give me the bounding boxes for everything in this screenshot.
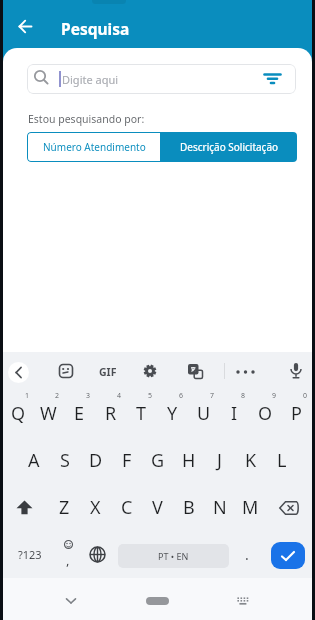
staticText: Pesquisa [61, 18, 130, 39]
staticText: F [122, 448, 132, 473]
button[interactable]: X [80, 484, 111, 531]
staticText: A [28, 448, 40, 473]
staticText: . [245, 545, 249, 564]
button[interactable]: , [57, 531, 79, 578]
button[interactable]: L [266, 437, 297, 484]
button[interactable]: S [49, 437, 80, 484]
staticText: 2 [55, 391, 60, 401]
staticText: Y [167, 401, 178, 426]
staticText: 8 [241, 391, 246, 401]
button[interactable]: P [281, 390, 312, 437]
staticText: S [60, 448, 70, 473]
staticText: PT • EN [158, 550, 189, 562]
button[interactable]: M [235, 484, 266, 531]
staticText: 6 [179, 391, 184, 401]
staticText: R [105, 401, 117, 426]
staticText: Z [59, 495, 70, 520]
staticText: B [183, 495, 195, 520]
button[interactable]: I [219, 390, 250, 437]
button[interactable] [266, 484, 312, 531]
button[interactable] [59, 364, 73, 378]
button[interactable]: Digite aqui [27, 64, 296, 94]
button[interactable]: Descrição Solicitação [161, 132, 297, 162]
staticText: K [245, 448, 257, 473]
button[interactable]: A [18, 437, 49, 484]
button[interactable]: H [173, 437, 204, 484]
button[interactable] [237, 597, 249, 605]
button[interactable]: V [142, 484, 173, 531]
button[interactable]: PT • EN [118, 544, 229, 568]
button[interactable] [290, 363, 302, 379]
staticText: Estou pesquisando por: [28, 112, 145, 126]
staticText: E [74, 401, 85, 426]
staticText: U [197, 401, 211, 426]
button[interactable]: ?123 [3, 531, 57, 578]
staticText: I [231, 401, 238, 426]
button[interactable]: J [204, 437, 235, 484]
staticText: H [182, 448, 196, 473]
staticText: X [90, 495, 101, 520]
button[interactable]: Número Atendimento [27, 132, 161, 162]
button[interactable] [188, 364, 203, 379]
button[interactable] [3, 484, 49, 531]
staticText: 1 [25, 391, 30, 401]
button[interactable]: E [64, 390, 95, 437]
button[interactable]: U [188, 390, 219, 437]
staticText: 4 [117, 391, 122, 401]
button[interactable] [79, 531, 115, 578]
button[interactable] [271, 542, 305, 569]
button[interactable]: C [111, 484, 142, 531]
button[interactable]: N [204, 484, 235, 531]
button[interactable]: O [250, 390, 281, 437]
button[interactable]: W [33, 390, 64, 437]
button[interactable]: Y [157, 390, 188, 437]
button[interactable]: D [80, 437, 111, 484]
button[interactable]: K [235, 437, 266, 484]
button[interactable]: F [111, 437, 142, 484]
button[interactable]: GIF [99, 365, 117, 379]
staticText: J [217, 448, 222, 473]
staticText: W [40, 401, 57, 426]
staticText: Descrição Solicitação [180, 140, 279, 154]
button[interactable] [236, 370, 255, 374]
staticText: 9 [272, 391, 277, 401]
staticText: ?123 [18, 547, 42, 562]
button[interactable]: T [126, 390, 157, 437]
staticText: 0 [303, 391, 308, 401]
staticText: , [66, 551, 70, 569]
staticText: D [89, 448, 103, 473]
staticText: P [291, 401, 302, 426]
staticText: V [152, 495, 163, 520]
staticText: Número Atendimento [43, 140, 146, 154]
button[interactable]: . [235, 531, 259, 578]
button[interactable] [19, 20, 32, 33]
button[interactable]: G [142, 437, 173, 484]
staticText: C [121, 495, 133, 520]
staticText: 3 [86, 391, 91, 401]
staticText: L [277, 448, 287, 473]
staticText: M [242, 495, 259, 520]
button[interactable]: Q [3, 390, 33, 437]
button[interactable]: R [95, 390, 126, 437]
staticText: Q [11, 401, 26, 426]
button[interactable] [146, 597, 169, 605]
staticText: 5 [148, 391, 153, 401]
button[interactable] [8, 362, 29, 383]
staticText: N [213, 495, 227, 520]
button[interactable]: Z [49, 484, 80, 531]
button[interactable]: B [173, 484, 204, 531]
button[interactable] [66, 598, 76, 604]
staticText: O [258, 401, 273, 426]
staticText: 7 [210, 391, 215, 401]
button[interactable] [143, 364, 157, 378]
staticText: Digite aqui [62, 72, 119, 87]
staticText: T [136, 401, 147, 426]
staticText: G [151, 448, 165, 473]
